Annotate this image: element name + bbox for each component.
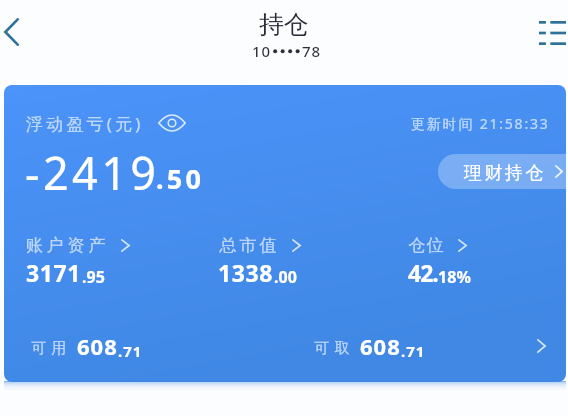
staticText: 仓位 [408, 235, 444, 256]
staticText: .71 [118, 341, 143, 361]
staticText: 理财持仓 [464, 162, 546, 185]
staticText: 可用 [29, 339, 69, 358]
staticText: 持仓 [259, 9, 309, 40]
button[interactable]: Switch list view [526, 7, 568, 59]
button[interactable]: 总市值 [218, 235, 298, 288]
staticText: 1338 [218, 257, 274, 288]
staticText: 608 [77, 331, 118, 361]
staticText: -2419 [25, 142, 160, 203]
button[interactable]: 账户资产 [26, 235, 110, 288]
staticText: 更新时间 21:58:33 [411, 114, 550, 133]
staticText: .71 [401, 341, 426, 361]
button[interactable]: 理财持仓 [438, 154, 566, 189]
staticText: 3171 [26, 257, 82, 288]
staticText: .50 [156, 160, 205, 197]
staticText: 浮动盈亏(元) [26, 112, 144, 135]
button[interactable]: 仓位 [408, 235, 472, 288]
staticText: .00 [274, 266, 298, 288]
staticText: 78 [302, 41, 322, 61]
button[interactable]: 可用 [4, 318, 566, 374]
staticText: .95 [82, 266, 106, 288]
staticText: 可取 [312, 339, 352, 358]
staticText: 42. [408, 257, 438, 288]
staticText: 10 [252, 41, 272, 61]
staticText: 18% [438, 266, 472, 288]
staticText: 总市值 [218, 235, 278, 256]
button[interactable]: Hide amounts [157, 108, 187, 138]
button[interactable]: Back [0, 6, 37, 58]
staticText: 账户资产 [26, 235, 110, 256]
staticText: 608 [360, 331, 401, 361]
